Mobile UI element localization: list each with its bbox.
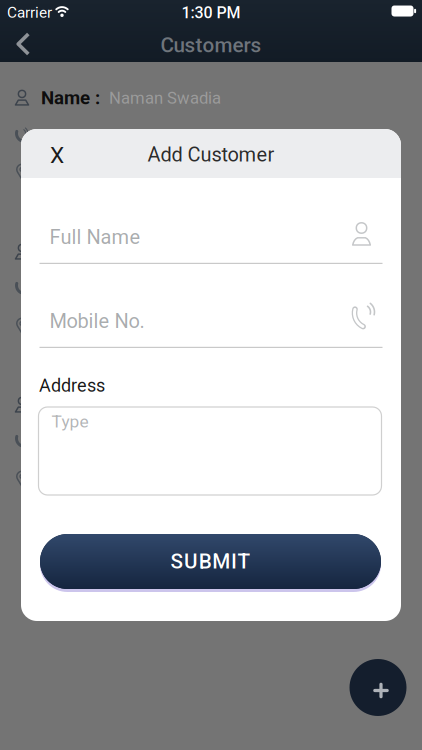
staticText: Raj Shah	[105, 395, 173, 415]
staticText: Type	[51, 411, 88, 432]
staticText: Carrier	[7, 3, 52, 21]
staticText: 1:30 PM	[181, 3, 240, 22]
button[interactable]: Full Name	[39, 214, 382, 264]
staticText: Address :	[41, 315, 128, 337]
button[interactable]: Address	[38, 407, 381, 495]
staticText: SUBMIT	[170, 549, 250, 574]
staticText: Full Name	[49, 225, 140, 249]
staticText: Naman Swadia	[105, 88, 221, 108]
staticText: Add Customer	[147, 143, 274, 166]
button[interactable]: SUBMIT	[40, 532, 381, 590]
button[interactable]: Back	[0, 26, 43, 62]
staticText: Name :	[41, 241, 105, 263]
staticText: Mobile No.	[49, 309, 144, 333]
button[interactable]: Mobile No.	[39, 298, 382, 348]
staticText: Name :	[41, 87, 105, 109]
staticText: Parth Patel	[105, 242, 189, 262]
staticText: Baroda	[128, 316, 184, 336]
staticText: Name :	[41, 394, 105, 416]
staticText: 9876543210	[114, 127, 208, 147]
staticText: Mobile :	[41, 126, 114, 148]
staticText: Customers	[160, 33, 261, 57]
staticText: X	[50, 142, 64, 169]
staticText: Address :	[41, 161, 128, 183]
staticText: Ahmedabad	[128, 162, 221, 182]
button[interactable]: Add Customer	[349, 659, 406, 716]
staticText: Address	[39, 375, 105, 396]
button[interactable]: Close	[36, 130, 78, 181]
